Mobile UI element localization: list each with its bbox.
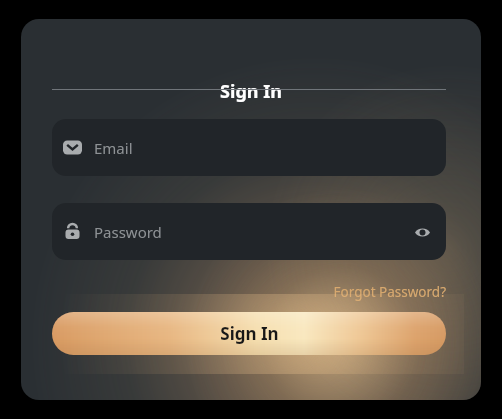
button[interactable]: Sign In — [52, 312, 446, 355]
staticText: Email — [94, 138, 133, 158]
button[interactable]: Password — [52, 203, 446, 260]
staticText: Password — [94, 222, 162, 242]
staticText: Forgot Password? — [333, 283, 446, 301]
button[interactable]: Show password — [410, 220, 434, 244]
staticText: Sign In — [21, 79, 481, 103]
button[interactable]: Email — [52, 119, 446, 176]
button[interactable]: Forgot Password? — [321, 281, 446, 303]
staticText: Sign In — [220, 322, 279, 345]
